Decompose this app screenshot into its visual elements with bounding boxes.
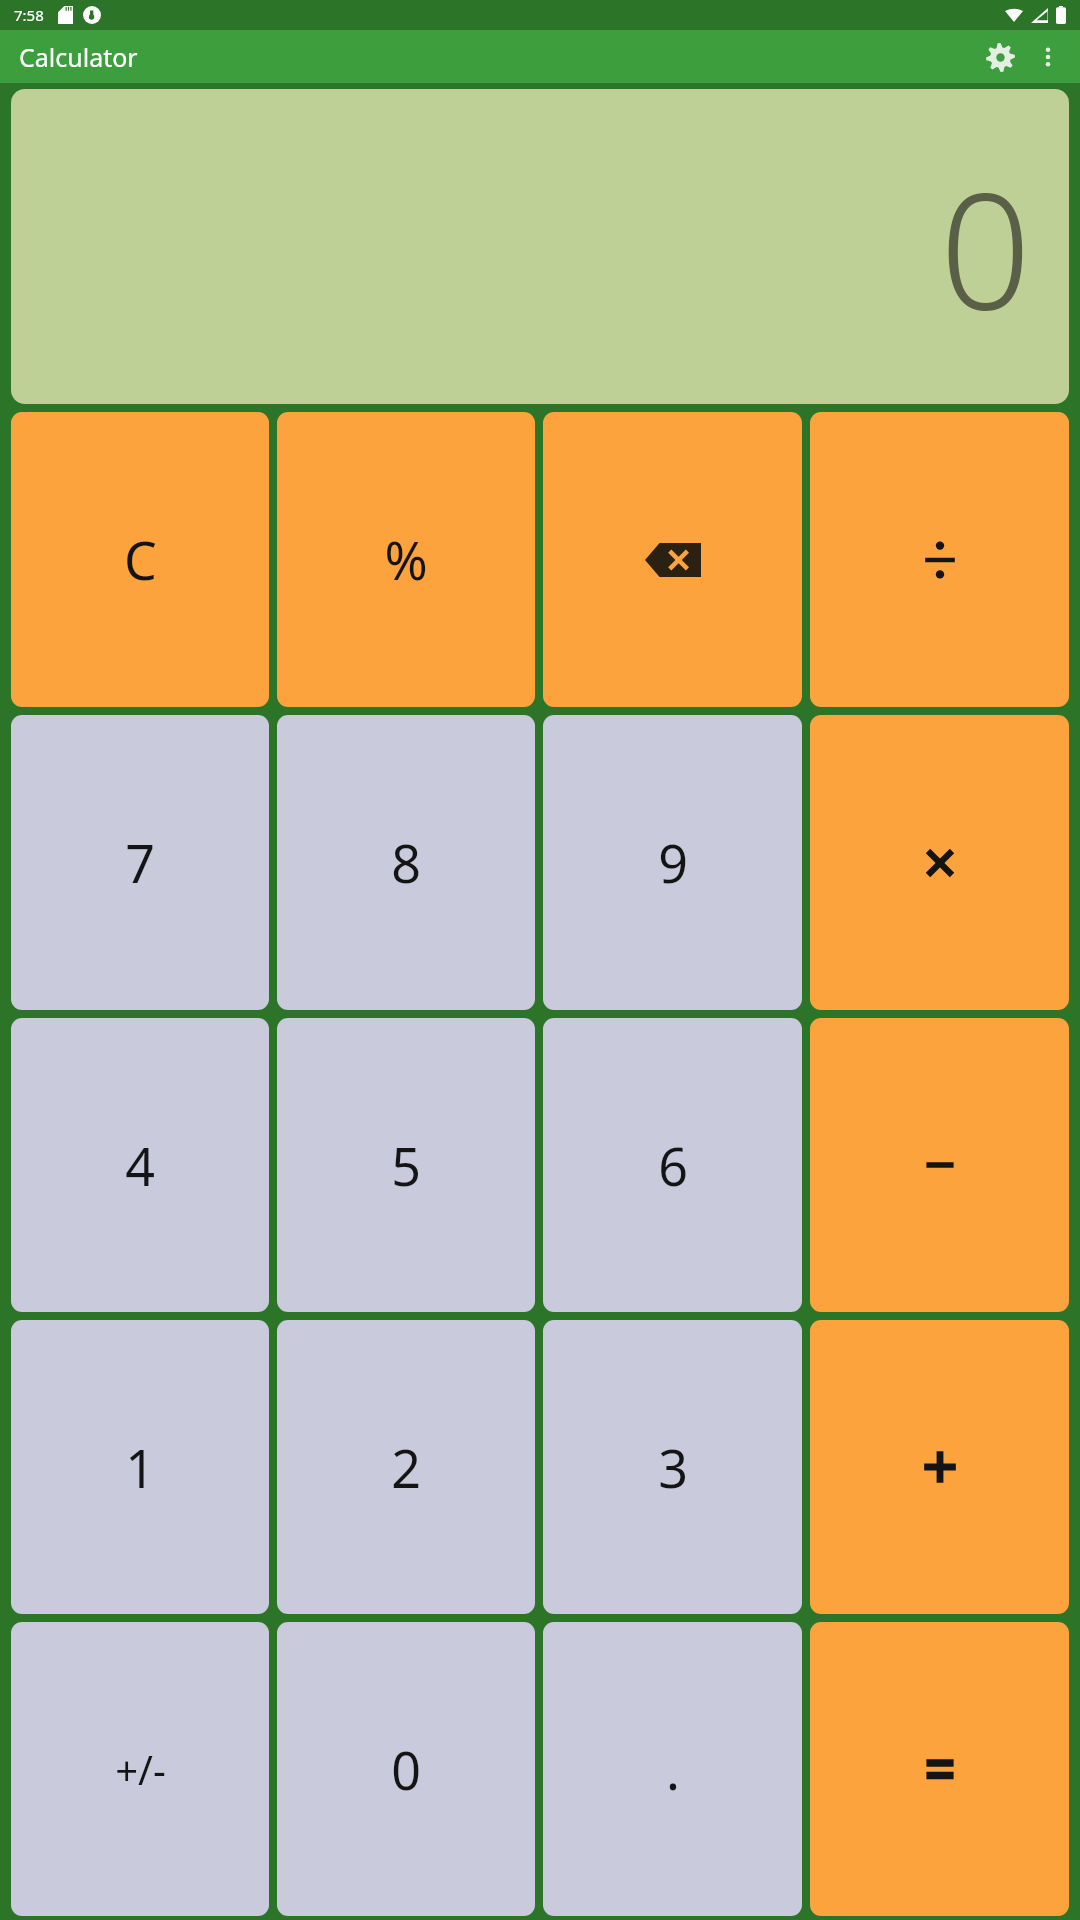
button[interactable]: 8	[277, 715, 535, 1010]
button[interactable]: Multiply	[810, 715, 1069, 1010]
button[interactable]: 0	[277, 1622, 535, 1916]
button[interactable]: 3	[543, 1320, 802, 1614]
button[interactable]: 1	[11, 1320, 269, 1614]
staticText: 4	[125, 1130, 155, 1201]
staticText: Calculator	[19, 40, 138, 74]
staticText: C	[124, 524, 157, 595]
button[interactable]: Minus	[810, 1018, 1069, 1312]
button[interactable]: .	[543, 1622, 802, 1916]
button[interactable]: C	[11, 412, 269, 707]
staticText: 5	[391, 1130, 421, 1201]
staticText: %	[384, 524, 428, 595]
staticText: .	[666, 1734, 680, 1805]
button[interactable]: 7	[11, 715, 269, 1010]
staticText: +/-	[115, 1742, 166, 1796]
button[interactable]: 9	[543, 715, 802, 1010]
staticText: 3	[658, 1432, 688, 1503]
staticText: 2	[391, 1432, 421, 1503]
button[interactable]: More options	[1024, 33, 1072, 81]
staticText: 7	[125, 827, 155, 898]
button[interactable]: Backspace	[543, 412, 802, 707]
button[interactable]: +/-	[11, 1622, 269, 1916]
button[interactable]: %	[277, 412, 535, 707]
button[interactable]: 5	[277, 1018, 535, 1312]
button[interactable]: 6	[543, 1018, 802, 1312]
staticText: 7:58	[14, 5, 44, 25]
button[interactable]: Equals	[810, 1622, 1069, 1916]
button[interactable]: Divide	[810, 412, 1069, 707]
button[interactable]: Settings	[976, 33, 1024, 81]
staticText: 9	[658, 827, 688, 898]
staticText: 0	[939, 138, 1031, 356]
staticText: 6	[658, 1130, 688, 1201]
staticText: 0	[391, 1734, 421, 1805]
staticText: 1	[125, 1432, 155, 1503]
button[interactable]: Plus	[810, 1320, 1069, 1614]
button[interactable]: 2	[277, 1320, 535, 1614]
staticText: 8	[391, 827, 421, 898]
button[interactable]: 4	[11, 1018, 269, 1312]
